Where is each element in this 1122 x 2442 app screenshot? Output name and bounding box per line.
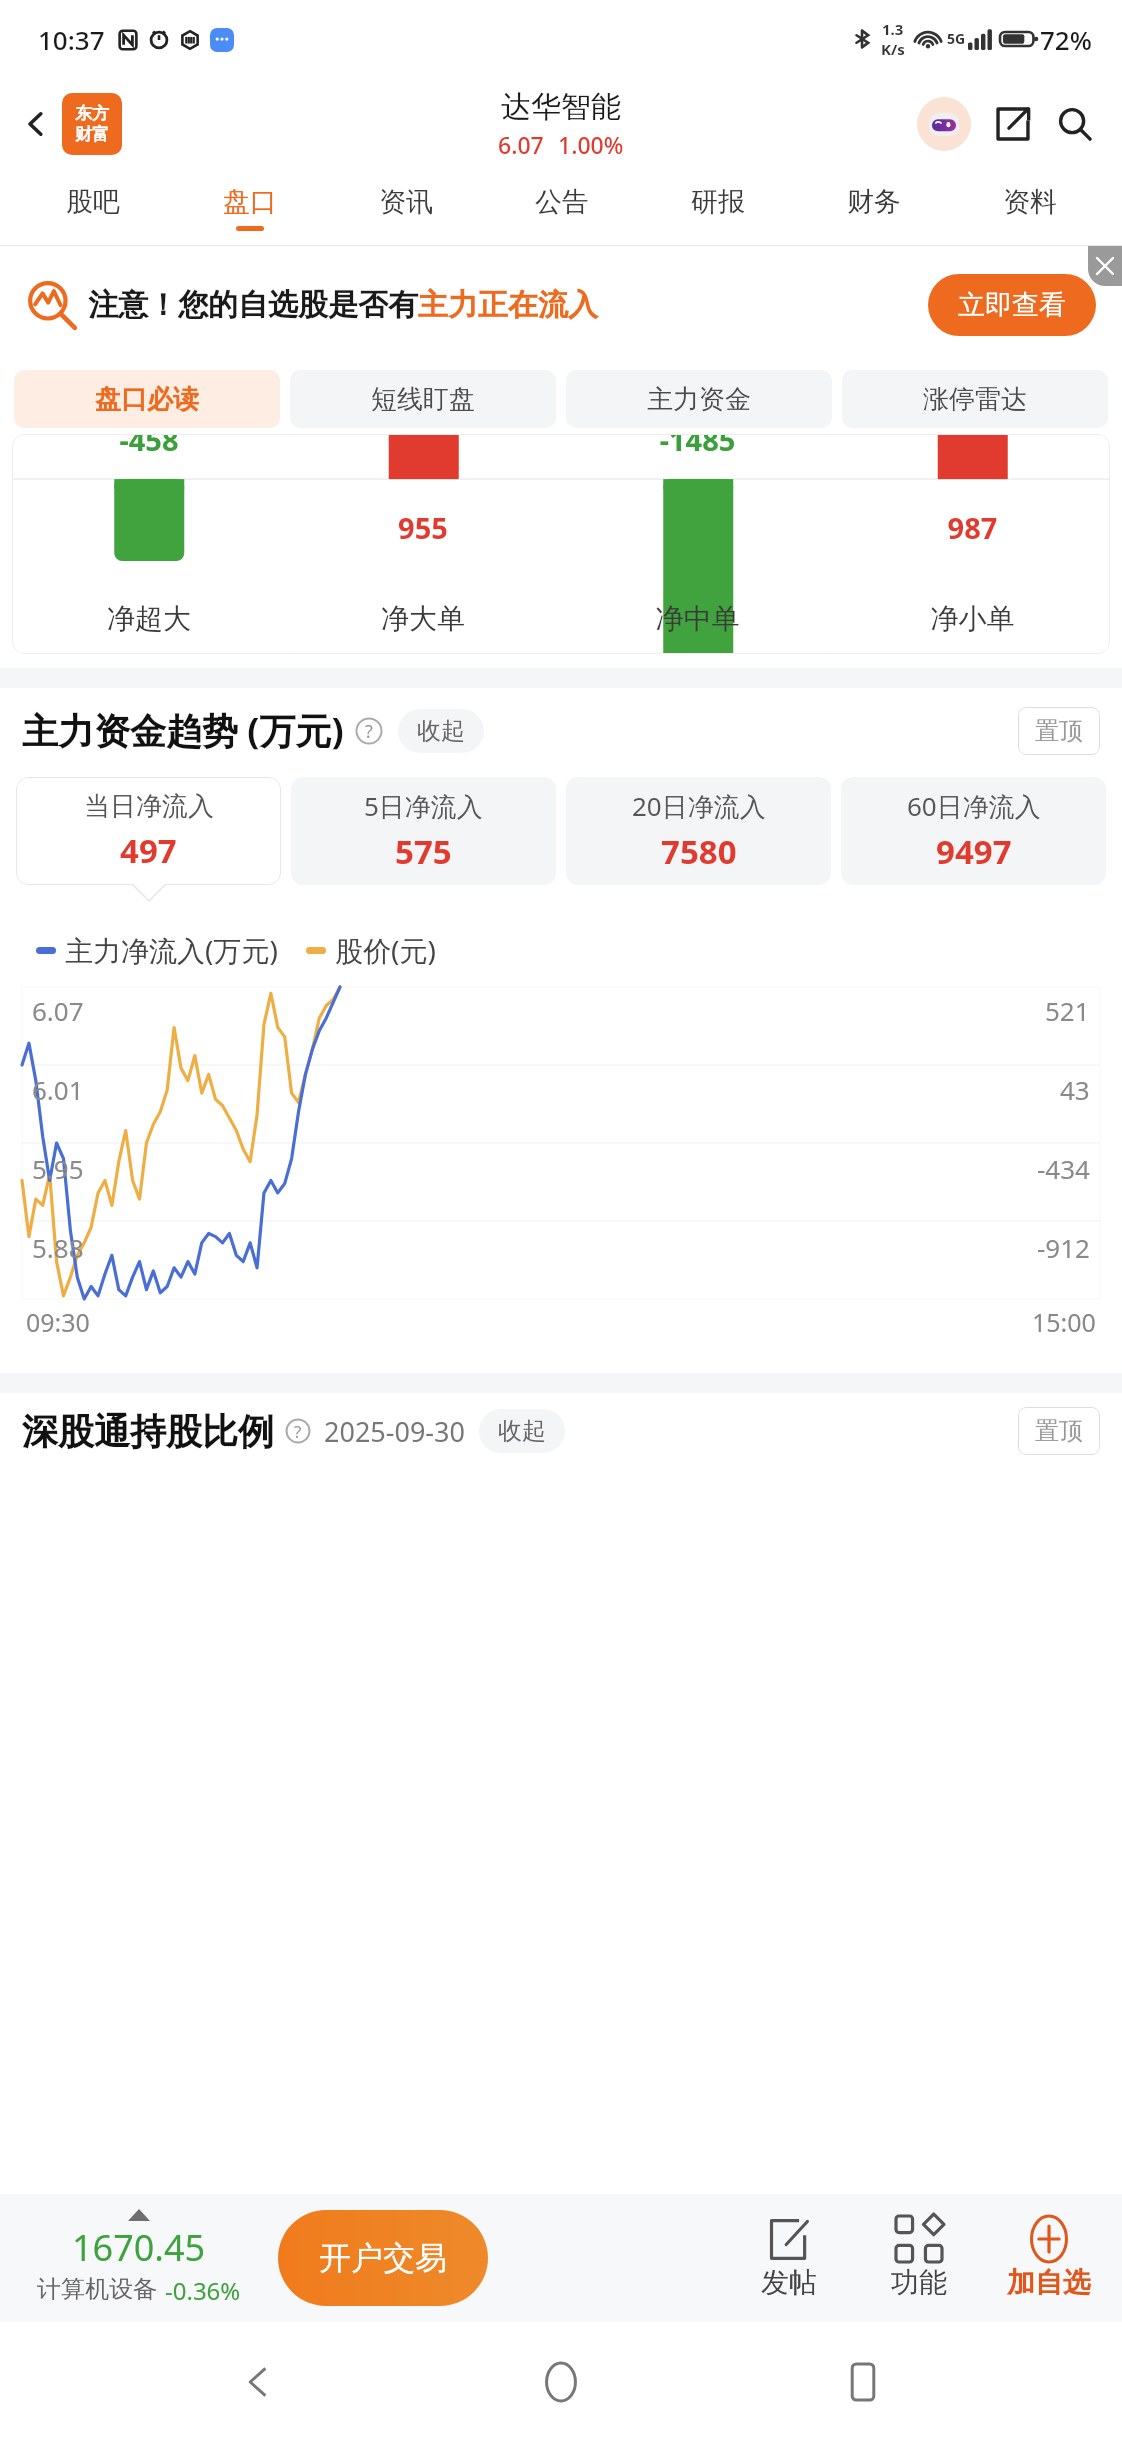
staticText: 575 xyxy=(395,829,452,874)
button[interactable]: 研报 xyxy=(640,170,796,246)
staticText: -1485 xyxy=(560,434,835,459)
button[interactable]: 短线盯盘 xyxy=(290,370,556,428)
staticText: 9497 xyxy=(936,829,1012,874)
staticText: 资讯 xyxy=(379,185,433,219)
staticText: 5.88 xyxy=(32,1230,84,1265)
button[interactable]: Recents xyxy=(820,2339,906,2425)
staticText: 5日净流入 xyxy=(364,788,483,824)
button[interactable]: Home xyxy=(518,2339,604,2425)
button[interactable]: Help xyxy=(354,716,384,746)
button[interactable]: 盘口 xyxy=(171,170,328,246)
staticText: 5.95 xyxy=(32,1151,84,1186)
staticText: 主力资金 xyxy=(647,383,751,416)
button[interactable]: 涨停雷达 xyxy=(842,370,1108,428)
staticText: 5G xyxy=(947,29,966,48)
staticText: 497 xyxy=(120,828,177,873)
button[interactable]: Back xyxy=(8,96,64,152)
staticText: 净中单 xyxy=(560,601,835,636)
button[interactable]: 当日净流入 xyxy=(16,777,281,885)
button[interactable]: 资讯 xyxy=(328,170,484,246)
button[interactable]: AI assistant xyxy=(914,94,974,154)
staticText: 盘口必读 xyxy=(95,383,199,416)
button[interactable]: 盘口必读 xyxy=(14,370,280,428)
staticText: 计算机设备 xyxy=(37,2274,157,2304)
staticText: 当日净流入 xyxy=(84,790,214,823)
button[interactable]: 收起 xyxy=(398,709,484,753)
staticText: 10:37 xyxy=(38,22,105,57)
staticText: 盘口 xyxy=(223,185,277,219)
staticText: 发帖 xyxy=(761,2265,817,2300)
staticText: 资料 xyxy=(1003,185,1057,219)
staticText: 短线盯盘 xyxy=(371,383,475,416)
button[interactable]: 功能 xyxy=(854,2216,984,2300)
staticText: 涨停雷达 xyxy=(923,383,1027,416)
staticText: 置顶 xyxy=(1035,716,1083,746)
staticText: 主力净流入(万元) xyxy=(65,931,278,969)
staticText: 收起 xyxy=(417,716,465,746)
button[interactable]: 公告 xyxy=(484,170,640,246)
staticText: 2025-09-30 xyxy=(324,1413,465,1450)
staticText: 1.00% xyxy=(558,129,624,160)
button[interactable]: 1670.45 xyxy=(0,2209,278,2307)
staticText: 955 xyxy=(286,508,560,547)
staticText: 达华智能 xyxy=(501,88,621,126)
staticText: 注意！您的自选股是否有 xyxy=(88,286,418,324)
button[interactable]: 60日净流入 xyxy=(841,777,1106,885)
staticText: 1.3 xyxy=(882,19,904,39)
button[interactable]: 东方财富 xyxy=(62,93,122,155)
staticText: 6.07 xyxy=(32,993,84,1028)
staticText: -0.36% xyxy=(165,2274,241,2307)
button[interactable]: 收起 xyxy=(479,1409,565,1453)
staticText: 研报 xyxy=(691,185,745,219)
staticText: 主力资金趋势 (万元) xyxy=(22,706,344,755)
staticText: 43 xyxy=(1060,1072,1090,1107)
staticText: 开户交易 xyxy=(319,2238,447,2278)
button[interactable]: 置顶 xyxy=(1018,1407,1100,1455)
staticText: 6.01 xyxy=(32,1072,84,1107)
staticText: 净小单 xyxy=(835,601,1110,636)
staticText: 6.07 xyxy=(498,129,544,160)
button[interactable]: 资料 xyxy=(952,170,1108,246)
button[interactable]: 开户交易 xyxy=(278,2210,488,2306)
staticText: 股价(元) xyxy=(335,931,436,969)
button[interactable]: 立即查看 xyxy=(928,274,1096,336)
button[interactable]: Close xyxy=(1088,246,1122,286)
button[interactable]: Search xyxy=(1046,95,1104,153)
button[interactable]: 财务 xyxy=(796,170,952,246)
button[interactable]: 主力资金 xyxy=(566,370,832,428)
staticText: 987 xyxy=(835,508,1110,547)
staticText: ? xyxy=(365,719,373,744)
staticText: 净大单 xyxy=(286,601,560,636)
staticText: -912 xyxy=(1037,1230,1090,1265)
staticText: 深股通持股比例 xyxy=(22,1409,274,1454)
button[interactable]: 5日净流入 xyxy=(291,777,556,885)
button[interactable]: Back xyxy=(216,2339,302,2425)
staticText: 09:30 xyxy=(26,1305,90,1339)
button[interactable]: 发帖 xyxy=(724,2216,854,2300)
staticText: 置顶 xyxy=(1035,1416,1083,1446)
staticText: 主力正在流入 xyxy=(418,286,598,324)
button[interactable]: 加自选 xyxy=(984,2216,1114,2300)
button[interactable]: 股吧 xyxy=(14,170,171,246)
staticText: 东方 xyxy=(75,103,109,124)
staticText: 20日净流入 xyxy=(632,788,766,824)
staticText: 7580 xyxy=(661,829,737,874)
button[interactable]: 注意！您的自选股是否有 xyxy=(26,246,1096,364)
staticText: -434 xyxy=(1037,1151,1090,1186)
staticText: 加自选 xyxy=(1007,2265,1091,2300)
staticText: K/s xyxy=(881,39,905,59)
staticText: 72% xyxy=(1040,22,1092,57)
staticText: 1670.45 xyxy=(72,2223,206,2272)
staticText: 收起 xyxy=(498,1416,546,1446)
button[interactable]: Share xyxy=(984,95,1042,153)
staticText: 财务 xyxy=(847,185,901,219)
staticText: 功能 xyxy=(891,2265,947,2300)
staticText: 60日净流入 xyxy=(907,788,1041,824)
button[interactable]: 20日净流入 xyxy=(566,777,831,885)
staticText: 15:00 xyxy=(1032,1305,1096,1339)
staticText: 财富 xyxy=(75,124,109,145)
staticText: 521 xyxy=(1045,993,1090,1028)
staticText: 净超大 xyxy=(12,601,286,636)
button[interactable]: 置顶 xyxy=(1018,707,1100,755)
staticText: 股吧 xyxy=(66,185,120,219)
